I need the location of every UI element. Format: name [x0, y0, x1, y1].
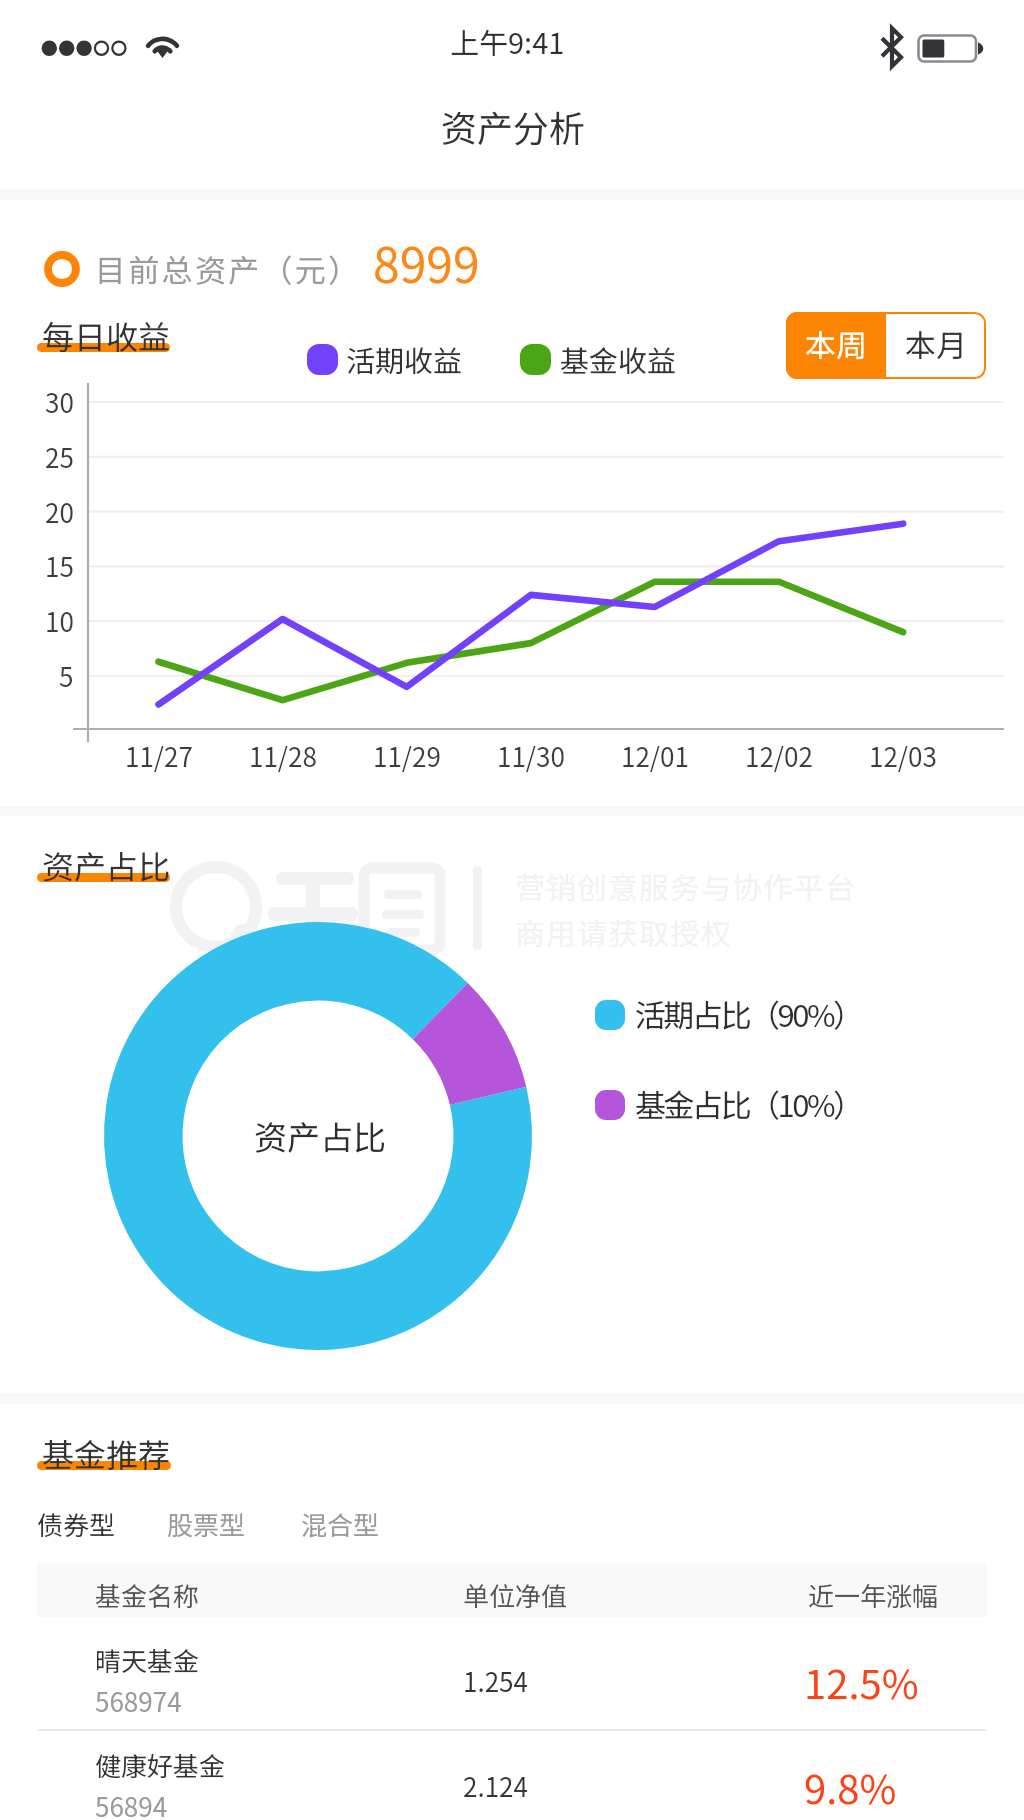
staticText: 混合型 — [301, 1505, 380, 1543]
other: Status icons — [0, 0, 1024, 90]
staticText: 资产分析 — [441, 100, 586, 152]
staticText: 本月 — [905, 321, 967, 366]
staticText: 11/27 — [125, 737, 193, 775]
button[interactable]: 股票型 — [155, 1496, 255, 1552]
staticText: 单位净值 — [463, 1576, 568, 1614]
staticText: 20 — [45, 493, 74, 531]
staticText: 基金名称 — [95, 1576, 200, 1614]
staticText: 25 — [45, 438, 74, 476]
staticText: 商用请获取授权 — [515, 910, 732, 953]
staticText: 近一年涨幅 — [808, 1576, 939, 1614]
staticText: 营销创意服务与协作平台 — [515, 864, 856, 907]
staticText: 30 — [45, 383, 74, 421]
button[interactable]: 本月 — [886, 312, 986, 379]
staticText: 11/28 — [249, 737, 317, 775]
staticText: 基金收益 — [560, 338, 677, 380]
staticText: 568974 — [95, 1682, 182, 1720]
staticText: 2.124 — [463, 1767, 528, 1805]
staticText: 股票型 — [167, 1505, 246, 1543]
staticText: 12/01 — [621, 737, 689, 775]
staticText: 债券型 — [37, 1505, 116, 1543]
staticText: 10 — [45, 602, 74, 640]
staticText: 活期收益 — [346, 338, 463, 380]
staticText: 56894 — [95, 1787, 168, 1820]
staticText: 11/30 — [497, 737, 565, 775]
staticText: 1.254 — [463, 1662, 528, 1700]
staticText: 12/02 — [745, 737, 813, 775]
button[interactable]: Total assets — [36, 238, 506, 300]
other: Total assets — [44, 251, 80, 287]
staticText: 活期占比（90%） — [635, 991, 862, 1036]
button[interactable]: 资产分析 — [0, 0, 1024, 190]
staticText: 基金占比（10%） — [635, 1081, 862, 1126]
staticText: 资产占比 — [254, 1112, 386, 1160]
staticText: 本周 — [805, 321, 867, 366]
staticText: 12/03 — [869, 737, 937, 775]
staticText: 健康好基金 — [95, 1746, 226, 1784]
staticText: 每日收益 — [42, 312, 171, 358]
staticText: 目前总资产（元） — [95, 246, 362, 291]
staticText: 8999 — [373, 227, 480, 289]
staticText: 5 — [59, 657, 74, 695]
staticText: 12.5% — [804, 1653, 919, 1711]
staticText: 资产占比 — [42, 842, 171, 888]
staticText: 11/29 — [373, 737, 441, 775]
staticText: 15 — [45, 547, 74, 585]
staticText: 9.8% — [804, 1758, 897, 1816]
button[interactable]: 本周 — [786, 312, 886, 379]
staticText: 晴天基金 — [95, 1641, 200, 1679]
button[interactable]: 混合型 — [289, 1496, 389, 1552]
button[interactable]: 晴天基金 — [37, 1618, 987, 1723]
button[interactable]: 债券型 — [25, 1496, 125, 1552]
staticText: 上午9:41 — [450, 20, 565, 62]
button[interactable]: 健康好基金 — [37, 1723, 987, 1820]
staticText: 基金推荐 — [42, 1430, 171, 1476]
